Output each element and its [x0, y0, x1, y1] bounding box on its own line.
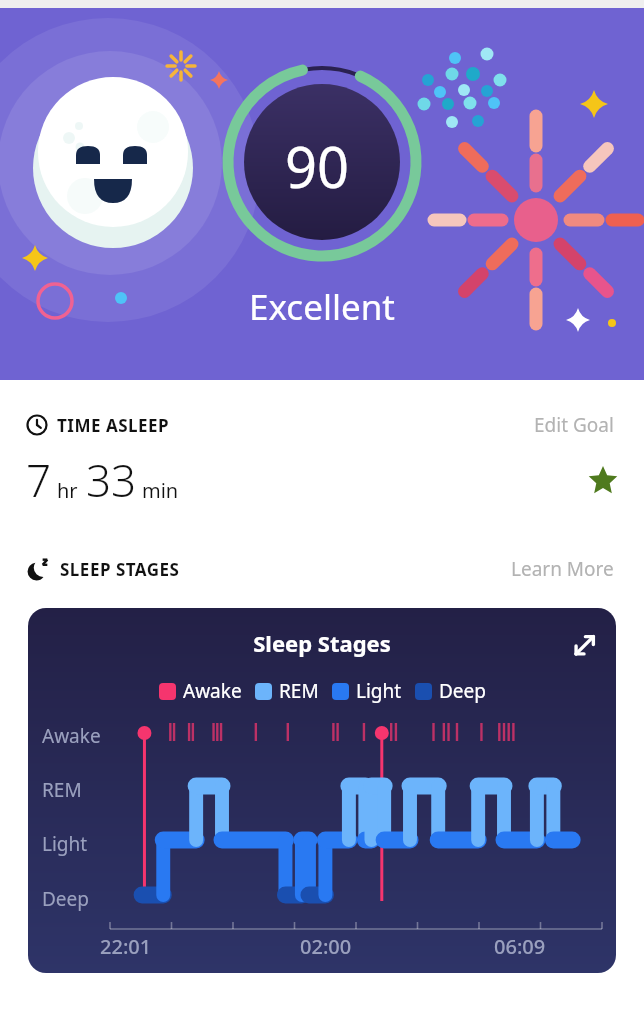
staticText: Light: [42, 831, 88, 857]
staticText: Edit Goal: [534, 412, 614, 438]
staticText: Light: [356, 678, 402, 704]
staticText: 06:09: [494, 933, 546, 960]
staticText: Deep: [439, 678, 486, 704]
staticText: Awake: [183, 678, 242, 704]
staticText: Awake: [42, 723, 101, 749]
staticText: Excellent: [0, 283, 644, 331]
staticText: 90: [285, 128, 350, 204]
button[interactable]: Learn More: [507, 552, 618, 586]
staticText: REM: [279, 678, 319, 704]
button[interactable]: Expand chart: [566, 628, 602, 664]
button[interactable]: REM: [255, 678, 319, 704]
staticText: Deep: [42, 886, 89, 912]
staticText: TIME ASLEEP: [57, 414, 170, 437]
staticText: 33: [86, 450, 137, 510]
button[interactable]: Awake: [159, 678, 242, 704]
button[interactable]: Deep: [415, 678, 486, 704]
button[interactable]: Edit Goal: [530, 408, 618, 442]
button[interactable]: Sleep Stages: [28, 608, 616, 973]
button[interactable]: Light: [332, 678, 402, 704]
staticText: 7: [26, 450, 52, 510]
staticText: Learn More: [511, 556, 614, 582]
staticText: REM: [42, 777, 82, 803]
staticText: SLEEP STAGES: [60, 558, 180, 581]
staticText: 02:00: [300, 933, 352, 960]
staticText: min: [142, 477, 179, 504]
staticText: hr: [57, 477, 78, 504]
staticText: Sleep Stages: [28, 628, 616, 658]
staticText: 22:01: [100, 933, 152, 960]
